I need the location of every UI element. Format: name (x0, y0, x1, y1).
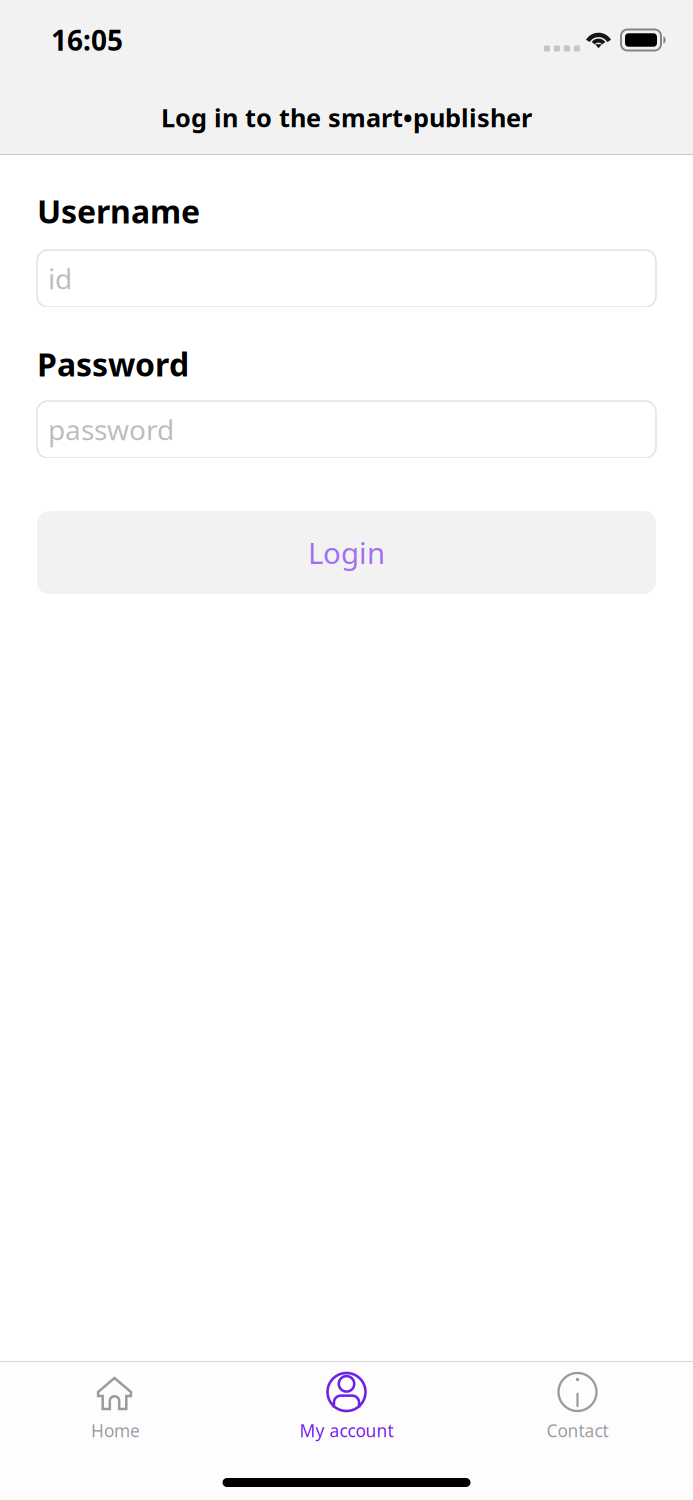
staticText: id (48, 260, 72, 297)
button[interactable]: Login (37, 511, 656, 594)
staticText: Log in to the smart•publisher (161, 101, 532, 134)
staticText: Home (91, 1419, 140, 1442)
staticText: Login (308, 533, 385, 572)
staticText: Username (37, 190, 200, 232)
staticText: 16:05 (51, 21, 123, 59)
staticText: Contact (546, 1419, 608, 1442)
button[interactable]: Home (0, 1353, 231, 1467)
button[interactable]: Contact (462, 1353, 693, 1467)
button[interactable]: My account (231, 1353, 462, 1467)
staticText: My account (299, 1419, 393, 1442)
staticText: Password (37, 343, 189, 385)
staticText: password (48, 411, 174, 448)
